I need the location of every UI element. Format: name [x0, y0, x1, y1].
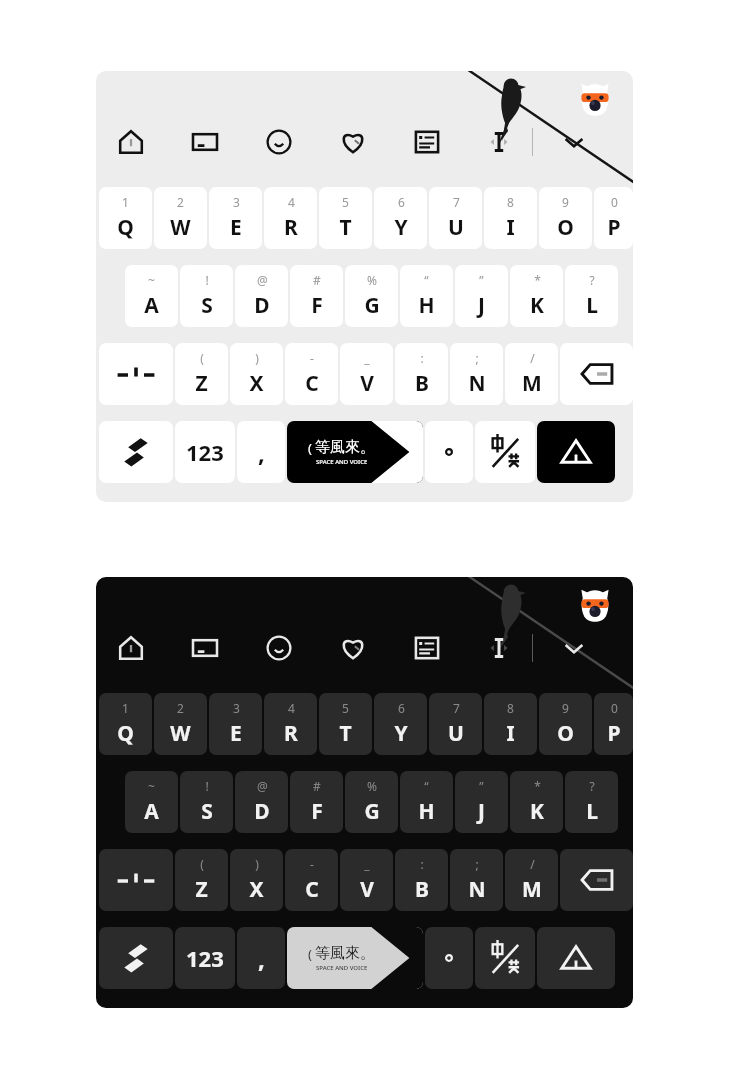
button[interactable] — [425, 421, 473, 483]
button[interactable] — [99, 343, 173, 405]
button[interactable]: @ — [235, 265, 288, 327]
staticText: 0 — [611, 700, 618, 716]
button[interactable]: Assistant — [575, 80, 615, 120]
button[interactable]: Switch Chinese English — [475, 927, 535, 989]
button[interactable]: 0 — [594, 187, 633, 249]
button[interactable]: Numbers — [175, 927, 235, 989]
button[interactable]: Backspace — [560, 849, 633, 911]
button[interactable] — [99, 849, 173, 911]
staticText: D — [254, 797, 270, 826]
button[interactable]: Space and voice — [287, 927, 423, 989]
staticText: ( — [308, 945, 312, 963]
button[interactable]: : — [395, 343, 448, 405]
button[interactable]: ( — [175, 849, 228, 911]
button[interactable]: Move cursor — [478, 121, 520, 163]
button[interactable]: 5 — [319, 693, 372, 755]
button[interactable]: 9 — [539, 187, 592, 249]
button[interactable]: 4 — [264, 187, 317, 249]
staticText: Y — [394, 719, 408, 748]
button[interactable]: / — [505, 849, 558, 911]
staticText: 9 — [562, 700, 569, 716]
button[interactable]: ! — [180, 265, 233, 327]
button[interactable] — [425, 927, 473, 989]
button[interactable]: Move cursor — [478, 627, 520, 669]
button[interactable]: Hide keyboard — [553, 121, 595, 163]
button[interactable]: 4 — [264, 693, 317, 755]
button[interactable]: 1 — [99, 693, 152, 755]
button[interactable]: Clipboard — [184, 121, 226, 163]
button[interactable]: Numbers — [175, 421, 235, 483]
button[interactable]: Emoji — [258, 627, 300, 669]
button[interactable]: ~ — [125, 771, 178, 833]
button[interactable]: ? — [565, 771, 618, 833]
button[interactable]: Notes — [406, 121, 448, 163]
button[interactable]: ) — [230, 849, 283, 911]
button[interactable]: Quick actions — [99, 927, 173, 989]
staticText: ” — [479, 272, 484, 288]
staticText: A — [144, 797, 159, 826]
staticText: Z — [195, 369, 208, 398]
button[interactable]: 3 — [209, 693, 262, 755]
button[interactable]: Notes — [406, 627, 448, 669]
button[interactable]: 2 — [154, 187, 207, 249]
button[interactable]: Clipboard — [184, 627, 226, 669]
button[interactable]: “ — [400, 265, 453, 327]
button[interactable]: 3 — [209, 187, 262, 249]
button[interactable]: Assistant — [575, 586, 615, 626]
button[interactable]: % — [345, 771, 398, 833]
button[interactable]: - — [285, 343, 338, 405]
button[interactable]: ; — [450, 849, 503, 911]
staticText: SPACE AND VOICE — [316, 458, 368, 466]
button[interactable]: / — [505, 343, 558, 405]
button[interactable]: 1 — [99, 187, 152, 249]
button[interactable]: * — [510, 771, 563, 833]
button[interactable]: Switch Chinese English — [475, 421, 535, 483]
button[interactable]: Backspace — [560, 343, 633, 405]
button[interactable]: 2 — [154, 693, 207, 755]
button[interactable]: # — [290, 771, 343, 833]
button[interactable]: Favorites — [332, 627, 374, 669]
button[interactable]: Home — [110, 121, 152, 163]
button[interactable]: _ — [340, 343, 393, 405]
button[interactable]: @ — [235, 771, 288, 833]
staticText: T — [339, 213, 352, 242]
button[interactable]: ” — [455, 265, 508, 327]
button[interactable]: Favorites — [332, 121, 374, 163]
button[interactable]: ; — [450, 343, 503, 405]
button[interactable]: : — [395, 849, 448, 911]
button[interactable]: - — [285, 849, 338, 911]
button[interactable]: Space and voice — [287, 421, 423, 483]
staticText: Q — [117, 213, 134, 242]
button[interactable]: “ — [400, 771, 453, 833]
button[interactable]: ? — [565, 265, 618, 327]
staticText: - — [310, 350, 314, 366]
button[interactable]: Hide keyboard — [553, 627, 595, 669]
button[interactable]: ” — [455, 771, 508, 833]
button[interactable]: 0 — [594, 693, 633, 755]
button[interactable]: * — [510, 265, 563, 327]
button[interactable]: ~ — [125, 265, 178, 327]
staticText: ? — [589, 778, 595, 794]
button[interactable]: 7 — [429, 187, 482, 249]
button[interactable]: _ — [340, 849, 393, 911]
button[interactable]: % — [345, 265, 398, 327]
button[interactable]: Home — [110, 627, 152, 669]
staticText: O — [557, 213, 574, 242]
button[interactable]: ! — [180, 771, 233, 833]
button[interactable]: Emoji — [258, 121, 300, 163]
button[interactable]: 9 — [539, 693, 592, 755]
button[interactable]: 8 — [484, 187, 537, 249]
button[interactable]: 5 — [319, 187, 372, 249]
button[interactable]: 8 — [484, 693, 537, 755]
button[interactable]: Enter — [537, 927, 615, 989]
button[interactable]: 7 — [429, 693, 482, 755]
button[interactable]: 6 — [374, 187, 427, 249]
button[interactable]: , — [237, 421, 285, 483]
button[interactable]: Quick actions — [99, 421, 173, 483]
button[interactable]: , — [237, 927, 285, 989]
button[interactable]: 6 — [374, 693, 427, 755]
button[interactable]: ( — [175, 343, 228, 405]
button[interactable]: ) — [230, 343, 283, 405]
button[interactable]: # — [290, 265, 343, 327]
button[interactable]: Enter — [537, 421, 615, 483]
